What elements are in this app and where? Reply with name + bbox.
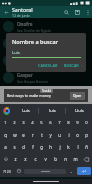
button[interactable]: g xyxy=(37,141,46,153)
button[interactable]: z xyxy=(11,153,20,165)
button[interactable]: w xyxy=(10,129,19,141)
button[interactable]: Space xyxy=(24,169,66,174)
button[interactable]: 1 xyxy=(1,117,10,129)
staticText: ñ xyxy=(85,144,88,150)
staticText: b xyxy=(54,156,57,162)
staticText: 5 xyxy=(40,120,43,126)
button[interactable]: t xyxy=(37,129,46,141)
staticText: n xyxy=(64,156,67,162)
staticText: Antonio xyxy=(17,55,35,61)
button[interactable]: 0 xyxy=(82,117,91,129)
staticText: Santoral xyxy=(12,6,33,13)
button[interactable]: j xyxy=(55,141,64,153)
button[interactable]: Save xyxy=(72,7,83,18)
staticText: k xyxy=(67,144,70,150)
button[interactable]: BUSCAR xyxy=(62,61,81,70)
staticText: h xyxy=(49,144,52,150)
button[interactable]: a xyxy=(1,141,10,153)
button[interactable]: 6 xyxy=(46,117,55,129)
button[interactable]: x xyxy=(20,153,30,165)
button[interactable]: 3 xyxy=(19,117,28,129)
staticText: ?123 xyxy=(3,169,11,174)
button[interactable]: s xyxy=(10,141,19,153)
button[interactable]: Back xyxy=(0,6,12,18)
button[interactable]: r xyxy=(28,129,37,141)
button[interactable]: i xyxy=(64,129,73,141)
button[interactable]: n xyxy=(60,153,70,165)
button[interactable]: v xyxy=(40,153,50,165)
button[interactable]: 5 xyxy=(37,117,46,129)
button[interactable]: 4 xyxy=(28,117,37,129)
button[interactable]: l xyxy=(73,141,82,153)
button[interactable]: CANCELAR xyxy=(36,61,60,70)
staticText: Beato Antonio Bajewski xyxy=(17,62,55,67)
staticText: Luis xyxy=(22,108,30,113)
staticText: q xyxy=(4,132,7,138)
button[interactable]: c xyxy=(30,153,40,165)
staticText: p xyxy=(85,132,88,138)
staticText: 0 xyxy=(85,120,88,126)
button[interactable]: e xyxy=(19,129,28,141)
button[interactable]: q xyxy=(1,129,10,141)
button[interactable]: 2 xyxy=(10,117,19,129)
button[interactable]: o xyxy=(73,129,82,141)
staticText: o xyxy=(76,132,79,138)
button[interactable]: Luis xyxy=(13,104,38,117)
button[interactable]: Search xyxy=(61,7,72,18)
staticText: e xyxy=(22,132,25,138)
staticText: g xyxy=(40,144,43,150)
button[interactable]: ?123 xyxy=(0,165,14,177)
staticText: t xyxy=(41,132,43,138)
button[interactable]: Enter xyxy=(77,167,91,175)
button[interactable]: ñ xyxy=(82,141,91,153)
button[interactable]: Onofre xyxy=(0,18,92,35)
staticText: x xyxy=(24,156,27,162)
staticText: a xyxy=(4,144,7,150)
staticText: d xyxy=(22,144,25,150)
staticText: Juan xyxy=(17,38,27,44)
staticText: Gaspar xyxy=(17,72,33,78)
staticText: 2 xyxy=(13,120,16,126)
button[interactable]: p xyxy=(82,129,91,141)
button[interactable]: Shift xyxy=(0,153,11,165)
button[interactable]: Backspace xyxy=(80,153,92,165)
staticText: c xyxy=(34,156,37,162)
staticText: San Onofre de Egipto xyxy=(17,28,51,33)
staticText: i xyxy=(68,132,70,138)
button[interactable]: f xyxy=(28,141,37,153)
button[interactable]: More options xyxy=(83,8,92,17)
staticText: Nombre a buscar xyxy=(12,38,59,46)
button[interactable]: m xyxy=(70,153,80,165)
staticText: Lluís xyxy=(75,108,84,113)
button[interactable]: Emoji xyxy=(14,165,24,177)
button[interactable]: k xyxy=(64,141,73,153)
button[interactable]: . xyxy=(66,165,76,177)
staticText: z xyxy=(14,156,17,162)
staticText: 9 xyxy=(76,120,79,126)
button[interactable]: Antonio xyxy=(0,52,92,69)
button[interactable]: Juan xyxy=(0,35,92,52)
staticText: San Gaspar Bertoni xyxy=(17,79,48,84)
staticText: 12 de junio xyxy=(12,13,30,18)
button[interactable]: y xyxy=(46,129,55,141)
staticText: 4 xyxy=(31,120,34,126)
button[interactable]: d xyxy=(19,141,28,153)
button[interactable]: Lluís xyxy=(66,104,92,117)
staticText: Open xyxy=(73,94,82,98)
button[interactable]: luis xyxy=(39,104,65,117)
button[interactable]: h xyxy=(46,141,55,153)
button[interactable]: 7 xyxy=(55,117,64,129)
button[interactable]: Google xyxy=(0,104,13,117)
staticText: w xyxy=(13,132,17,138)
button[interactable]: 9 xyxy=(73,117,82,129)
staticText: luis xyxy=(49,108,56,113)
staticText: Test Ad xyxy=(42,89,51,93)
button[interactable]: Open xyxy=(70,92,85,100)
button[interactable]: Gaspar xyxy=(0,69,92,86)
button[interactable]: u xyxy=(55,129,64,141)
staticText: BUSCAR xyxy=(64,63,79,68)
button[interactable]: b xyxy=(50,153,60,165)
button[interactable]: 8 xyxy=(64,117,73,129)
staticText: m xyxy=(73,156,78,162)
